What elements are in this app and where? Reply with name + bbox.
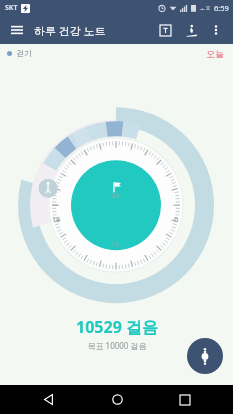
button[interactable]: Back (28, 385, 68, 414)
staticText: SKT (5, 3, 18, 13)
staticText: 목표 10000 걸음 (87, 340, 147, 351)
staticText: 10529 걸음 (76, 316, 158, 338)
button[interactable]: More actions (187, 338, 223, 374)
button[interactable]: Menu (8, 21, 26, 39)
button[interactable]: Activity (181, 20, 201, 40)
staticText: 6:59 (214, 3, 229, 13)
button[interactable]: Text note (155, 20, 175, 40)
staticText: 24 (111, 191, 120, 201)
button[interactable]: Recents (165, 385, 205, 414)
button[interactable]: Home (97, 385, 137, 414)
staticText: 18 (52, 215, 61, 225)
staticText: 6 (174, 215, 179, 225)
staticText: ㅗㅍ (199, 4, 211, 12)
button[interactable]: 오늘 (206, 48, 224, 59)
button[interactable]: 걷기 (7, 48, 32, 58)
button[interactable]: More options (207, 21, 225, 39)
staticText: 하루 건강 노트 (34, 23, 106, 38)
staticText: 12 (111, 240, 120, 250)
staticText: 걷기 (16, 48, 32, 58)
